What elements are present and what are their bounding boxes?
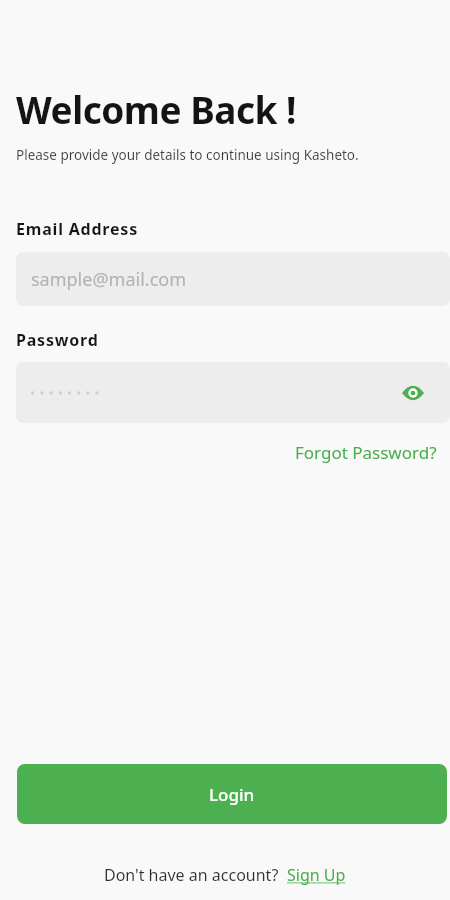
staticText: Password: [16, 329, 99, 351]
button[interactable]: Sign Up: [287, 864, 346, 886]
staticText: Login: [209, 783, 255, 806]
button[interactable]: Login: [17, 764, 447, 824]
button[interactable]: Show password: [396, 376, 430, 410]
staticText: Please provide your details to continue …: [16, 146, 359, 164]
staticText: Sign Up: [287, 864, 346, 886]
staticText: Forgot Password?: [295, 441, 437, 464]
button[interactable]: Show password: [16, 362, 450, 423]
button[interactable]: Forgot Password?: [295, 439, 450, 466]
button[interactable]: sample@mail.com: [16, 252, 450, 306]
staticText: sample@mail.com: [31, 267, 186, 292]
staticText: Welcome Back !: [16, 84, 297, 134]
staticText: Email Address: [16, 218, 139, 240]
staticText: Don't have an account?: [104, 864, 279, 886]
